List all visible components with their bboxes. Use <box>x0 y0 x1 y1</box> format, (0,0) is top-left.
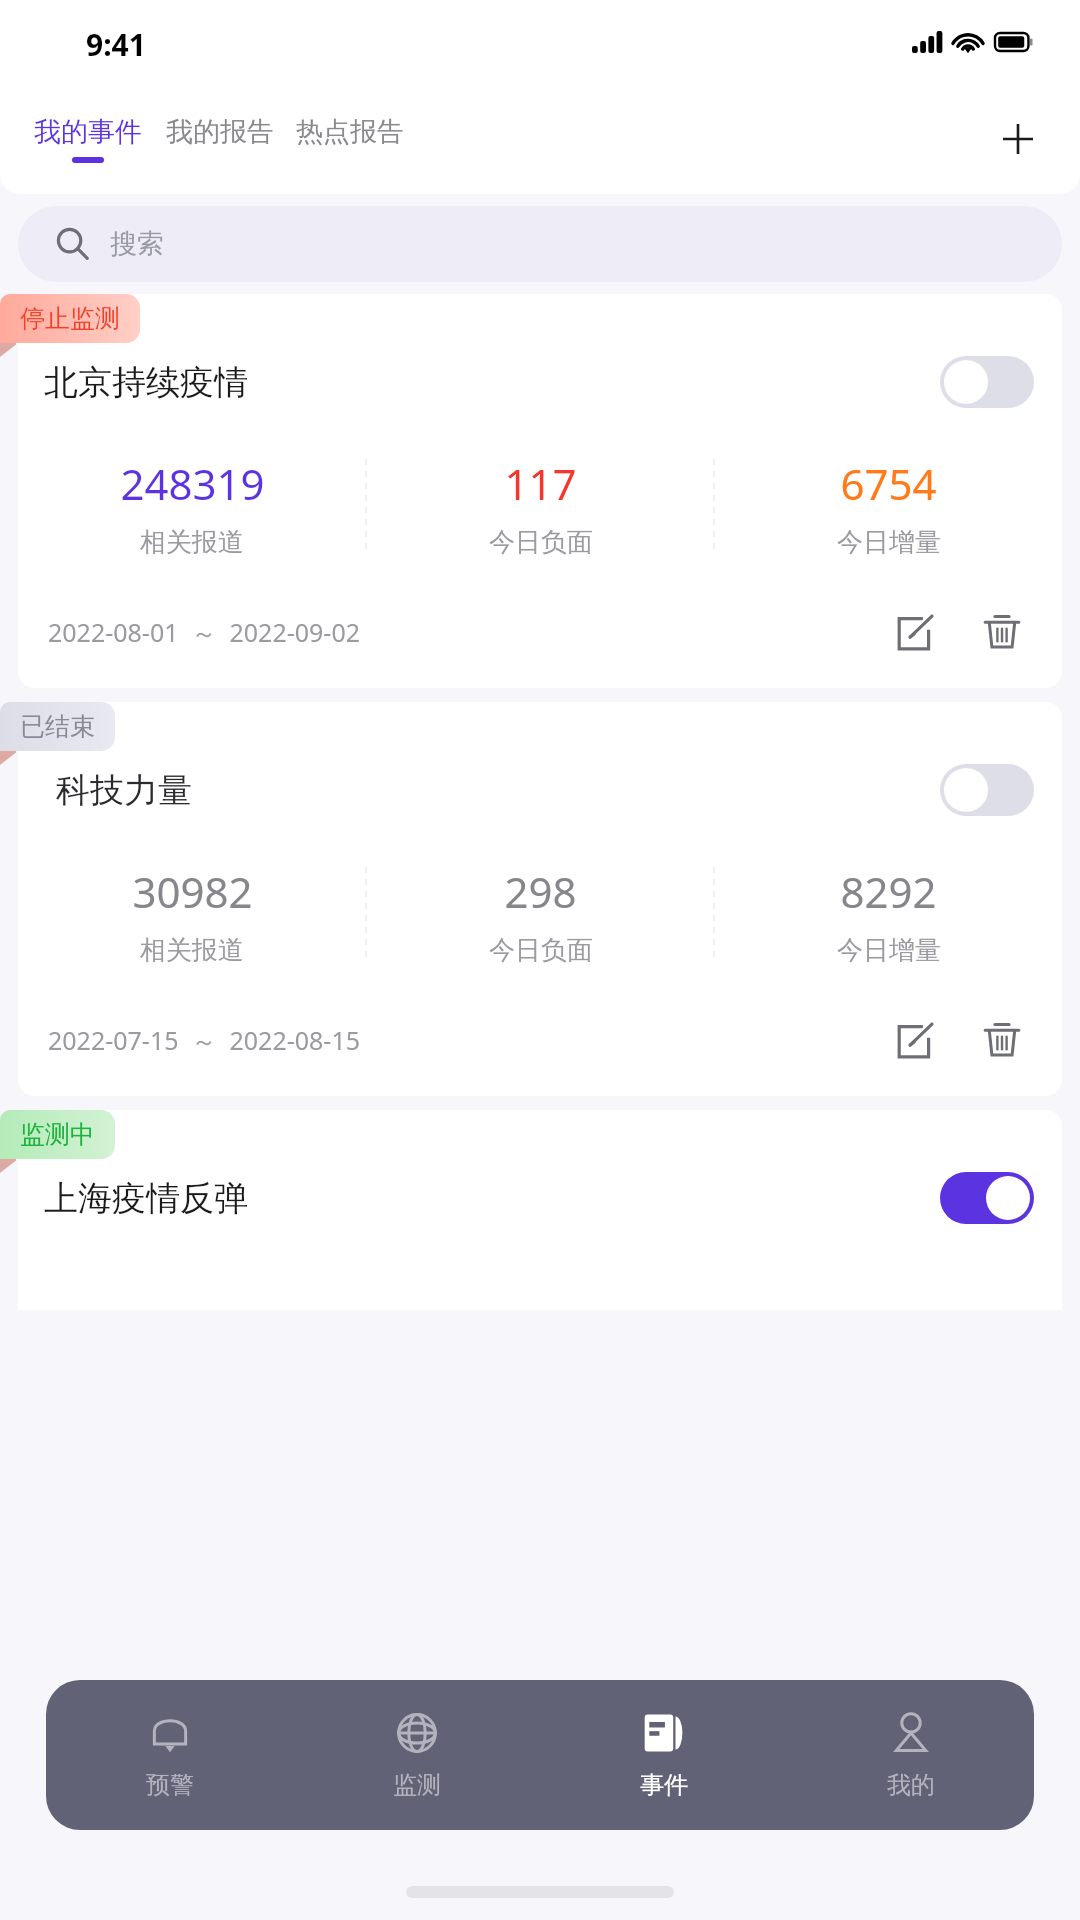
button[interactable]: Delete <box>972 1010 1032 1070</box>
button[interactable]: 科技力量 <box>18 702 1062 1096</box>
staticText: 我的报告 <box>166 115 274 149</box>
staticText: 相关报道 <box>140 934 244 967</box>
staticText: 我的 <box>887 1770 935 1800</box>
staticText: 今日增量 <box>837 526 941 559</box>
staticText: 搜索 <box>110 227 164 261</box>
button[interactable]: 北京持续疫情 <box>18 294 1062 688</box>
staticText: 今日负面 <box>489 526 593 559</box>
staticText: 事件 <box>640 1770 688 1800</box>
staticText: 监测 <box>393 1770 441 1800</box>
button[interactable]: 热点报告 <box>296 111 404 167</box>
staticText: 科技力量 <box>56 769 192 812</box>
staticText: 我的事件 <box>34 115 142 149</box>
button[interactable]: 上海疫情反弹 <box>18 1110 1062 1310</box>
staticText: 监测中 <box>20 1119 95 1150</box>
staticText: 6754 <box>840 455 937 512</box>
staticText: 2022-08-01 ～ 2022-09-02 <box>48 615 361 649</box>
staticText: 2022-07-15 ～ 2022-08-15 <box>48 1023 361 1057</box>
button[interactable]: Monitoring off <box>940 764 1034 816</box>
button[interactable]: 我的 <box>787 1680 1034 1830</box>
staticText: 117 <box>504 455 577 512</box>
staticText: 今日增量 <box>837 934 941 967</box>
staticText: 30982 <box>132 863 253 920</box>
staticText: 预警 <box>146 1770 194 1800</box>
button[interactable]: Monitoring off <box>940 356 1034 408</box>
staticText: 今日负面 <box>489 934 593 967</box>
button[interactable]: 我的报告 <box>166 111 274 167</box>
button[interactable]: 我的事件 <box>34 111 142 167</box>
staticText: 8292 <box>840 863 937 920</box>
staticText: 相关报道 <box>140 526 244 559</box>
staticText: 热点报告 <box>296 115 404 149</box>
button[interactable]: 事件 <box>540 1680 787 1830</box>
button[interactable]: Monitoring on <box>940 1172 1034 1224</box>
staticText: 248319 <box>120 455 265 512</box>
staticText: 北京持续疫情 <box>44 361 248 404</box>
button[interactable]: Delete <box>972 602 1032 662</box>
button[interactable]: Edit <box>886 1010 946 1070</box>
button[interactable]: 监测 <box>293 1680 540 1830</box>
button[interactable]: Add event <box>990 111 1046 167</box>
button[interactable]: 搜索 <box>18 206 1062 282</box>
staticText: 298 <box>504 863 577 920</box>
staticText: 已结束 <box>20 711 95 742</box>
button[interactable]: 预警 <box>46 1680 293 1830</box>
button[interactable]: Edit <box>886 602 946 662</box>
staticText: 停止监测 <box>20 303 120 334</box>
staticText: 上海疫情反弹 <box>44 1177 248 1220</box>
staticText: 9:41 <box>86 24 146 65</box>
